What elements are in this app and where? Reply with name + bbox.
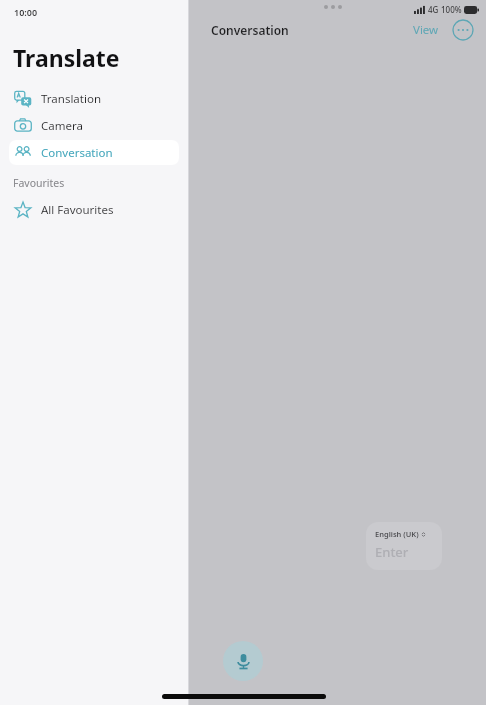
button[interactable]: Camera [9,113,179,138]
staticText: All Favourites [41,202,114,218]
staticText: Conversation [41,145,113,161]
staticText: 100% [441,4,462,15]
staticText: View [413,22,439,38]
button[interactable]: All Favourites [9,197,179,222]
staticText: 4G [428,4,439,15]
button[interactable]: English (UK) [366,522,442,570]
staticText: English (UK) [375,529,419,539]
button[interactable]: More options [452,19,474,41]
button[interactable]: View [409,19,443,41]
button[interactable]: Translation [9,86,179,111]
staticText: Translate [13,42,120,73]
button[interactable]: Microphone [223,641,263,681]
staticText: Conversation [211,22,289,38]
staticText: Camera [41,118,83,134]
staticText: Favourites [13,176,65,190]
button[interactable]: Conversation [9,140,179,165]
staticText: Translation [41,91,102,107]
staticText: 10:00 [14,6,38,18]
staticText: Enter text [375,543,433,563]
